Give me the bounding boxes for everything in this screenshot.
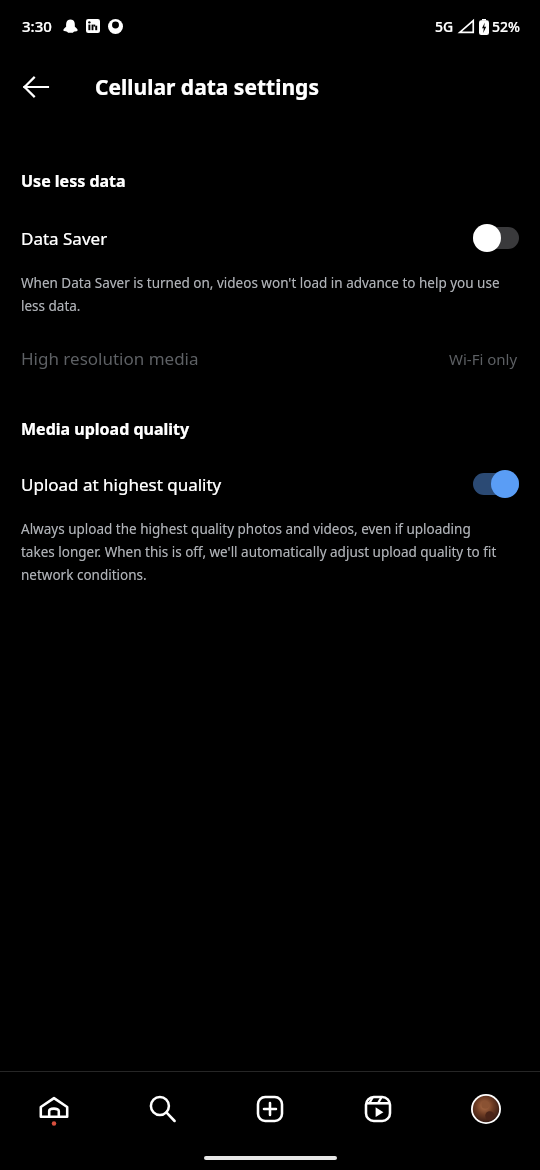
button[interactable]: Search: [108, 1072, 216, 1146]
staticText: Use less data: [21, 170, 126, 192]
button[interactable]: Create: [216, 1072, 324, 1146]
button[interactable]: High resolution media: [0, 343, 540, 374]
button[interactable]: Data Saver: [0, 220, 540, 256]
button[interactable]: Back: [8, 59, 64, 115]
staticText: 52%: [492, 17, 520, 36]
staticText: 3:30: [22, 16, 52, 36]
button[interactable]: Upload at highest quality: [0, 466, 540, 502]
staticText: Cellular data settings: [95, 73, 319, 102]
staticText: Media upload quality: [21, 418, 190, 440]
staticText: Data Saver: [21, 227, 473, 250]
staticText: Wi-Fi only: [449, 349, 518, 369]
button[interactable]: Reels: [324, 1072, 432, 1146]
staticText: 5G: [435, 17, 454, 36]
staticText: When Data Saver is turned on, videos won…: [21, 274, 506, 315]
staticText: High resolution media: [21, 347, 449, 370]
staticText: Always upload the highest quality photos…: [21, 520, 506, 584]
button[interactable]: Profile: [432, 1072, 540, 1146]
staticText: Upload at highest quality: [21, 473, 473, 496]
button[interactable]: Home: [0, 1072, 108, 1146]
